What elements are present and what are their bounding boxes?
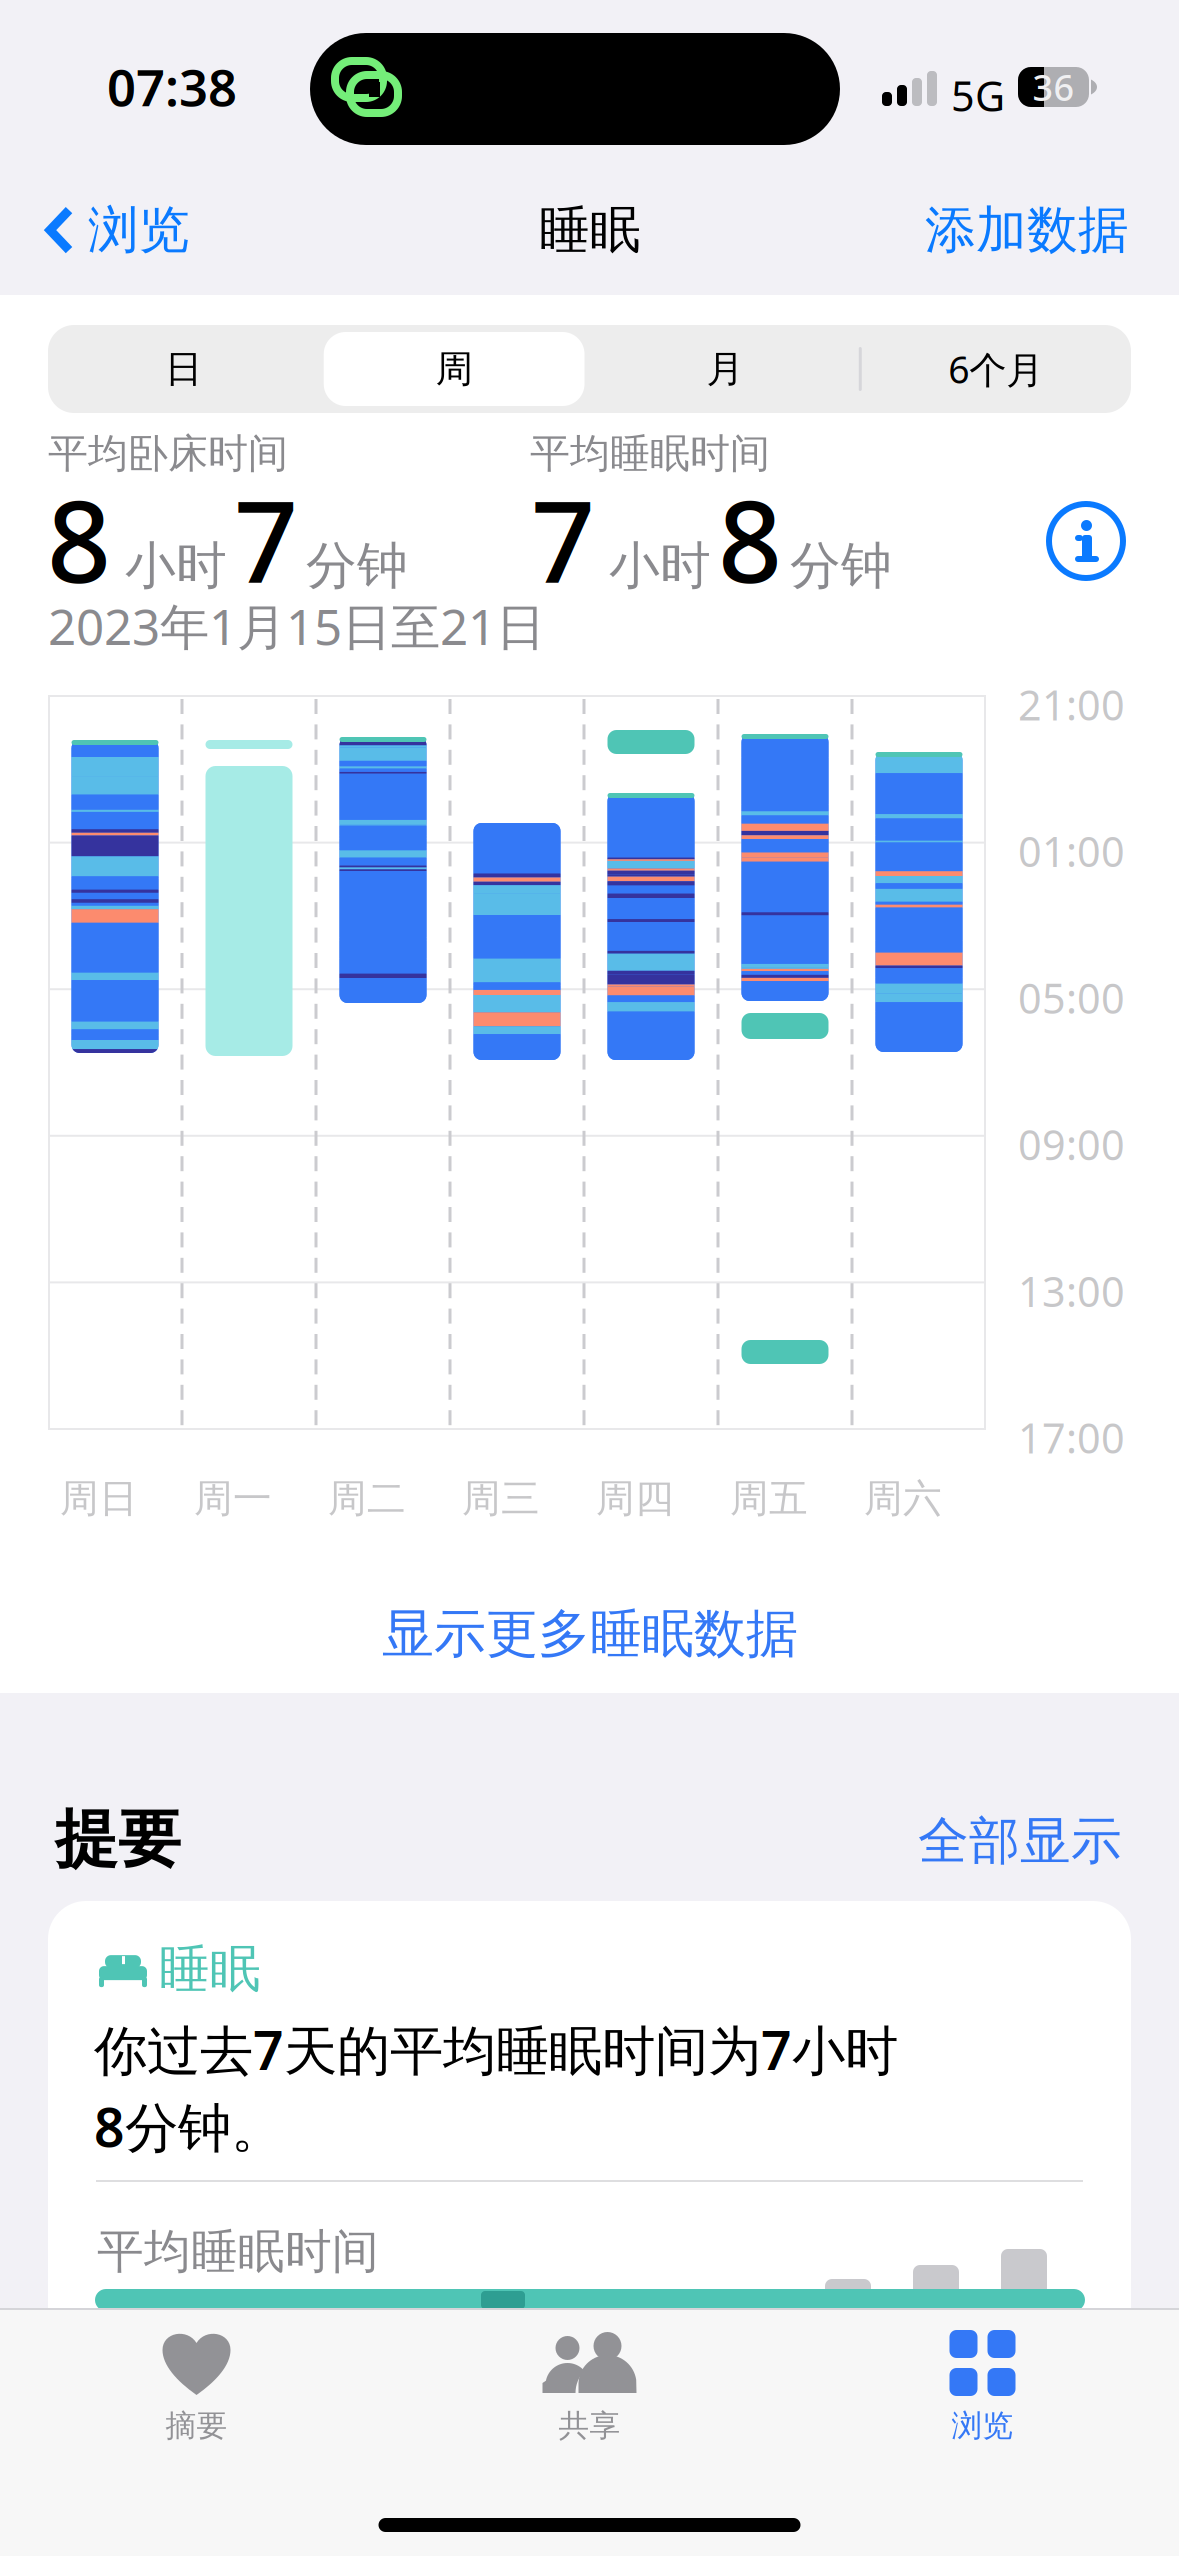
button[interactable]: 关于睡眠数据 [1033,488,1139,594]
staticText: 显示更多睡眠数据 [382,1602,798,1666]
button[interactable]: 添加数据 [899,175,1155,285]
staticText: 09:00 [1018,1117,1125,1172]
button[interactable]: 周 [319,325,590,413]
staticText: 分钟 [306,535,408,597]
staticText: 浏览 [88,199,190,261]
button[interactable]: 浏览 [786,2327,1179,2449]
button[interactable]: 浏览 [12,175,222,285]
button[interactable]: 日 [48,325,319,413]
staticText: 提要 [55,1801,181,1878]
staticText: 共享 [558,2407,620,2445]
button[interactable]: 摘要 [0,2327,393,2449]
staticText: 分钟 [790,535,892,597]
staticText: 周日 [60,1475,138,1522]
staticText: 8分钟。 [94,2091,284,2162]
staticText: 7 [531,465,595,614]
button[interactable]: 共享 [393,2327,786,2449]
staticText: 周二 [328,1475,406,1522]
staticText: 周六 [864,1475,942,1522]
staticText: 睡眠 [539,199,641,261]
staticText: 周五 [730,1475,808,1522]
staticText: 周 [436,346,473,392]
staticText: 睡眠 [159,1938,261,2000]
staticText: 日 [165,346,202,392]
staticText: 05:00 [1018,970,1125,1025]
staticText: 月 [706,346,743,392]
staticText: 07:38 [107,53,237,120]
staticText: 8 [718,465,782,614]
staticText: 01:00 [1018,824,1125,878]
staticText: 平均睡眠时间 [530,429,770,478]
staticText: 小时 [609,535,711,597]
staticText: 8 [47,465,111,614]
staticText: 17:00 [1018,1410,1125,1465]
staticText: 36 [1032,63,1074,111]
staticText: 平均睡眠时间 [97,2223,379,2280]
staticText: 小时 [125,535,227,597]
staticText: 21:00 [1018,677,1125,732]
staticText: 2023年1月15日至21日 [48,593,545,658]
staticText: 6个月 [948,344,1043,394]
staticText: 周四 [596,1475,674,1522]
staticText: 平均卧床时间 [48,429,288,478]
staticText: 13:00 [1018,1263,1125,1318]
staticText: 周三 [462,1475,540,1522]
staticText: 摘要 [165,2407,227,2445]
staticText: 5G [951,68,1005,123]
staticText: 周一 [194,1475,272,1522]
button[interactable]: 6个月 [860,325,1131,413]
button[interactable]: 全部显示 [904,1798,1136,1884]
button[interactable]: 月 [589,325,860,413]
staticText: 7 [234,465,298,614]
staticText: 浏览 [951,2407,1013,2445]
button[interactable]: 显示更多睡眠数据 [352,1576,828,1692]
staticText: 你过去7天的平均睡眠时间为7小时 [94,2014,898,2085]
staticText: 全部显示 [918,1810,1122,1872]
staticText: 添加数据 [925,199,1129,261]
